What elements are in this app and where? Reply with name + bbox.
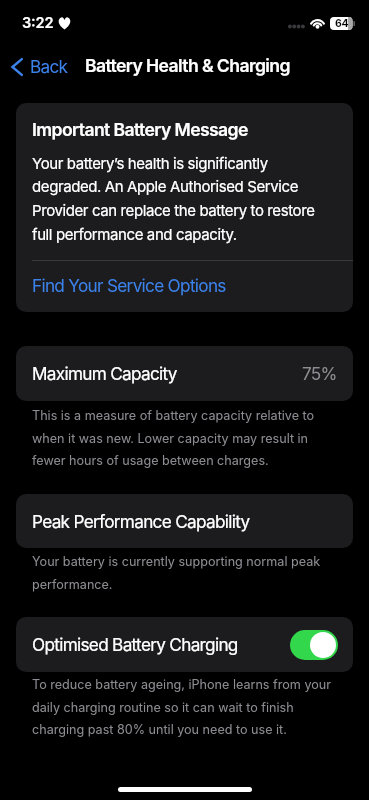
button[interactable]: Maximum Capacity <box>16 346 353 401</box>
button[interactable]: Optimised Battery Charging, on <box>290 630 338 660</box>
staticText: This is a measure of battery capacity re… <box>32 408 345 468</box>
staticText: Back <box>30 56 68 77</box>
staticText: Find Your Service Options <box>32 275 226 296</box>
button[interactable]: Back <box>4 52 76 81</box>
staticText: Optimised Battery Charging <box>32 634 238 655</box>
button[interactable]: Find Your Service Options <box>16 261 353 312</box>
staticText: 3:22 <box>22 14 54 32</box>
staticText: To reduce battery ageing, iPhone learns … <box>32 677 345 737</box>
other: Back <box>11 58 23 76</box>
button[interactable]: Peak Performance Capability <box>16 494 353 548</box>
staticText: 64 <box>335 17 349 30</box>
staticText: Your battery is currently supporting nor… <box>32 554 345 592</box>
staticText: 75% <box>302 363 337 384</box>
staticText: Maximum Capacity <box>32 363 177 384</box>
staticText: Important Battery Message <box>32 119 248 140</box>
staticText: Your battery’s health is significantly d… <box>32 154 327 244</box>
staticText: Peak Performance Capability <box>32 511 250 532</box>
staticText: Battery Health & Charging <box>85 55 290 76</box>
